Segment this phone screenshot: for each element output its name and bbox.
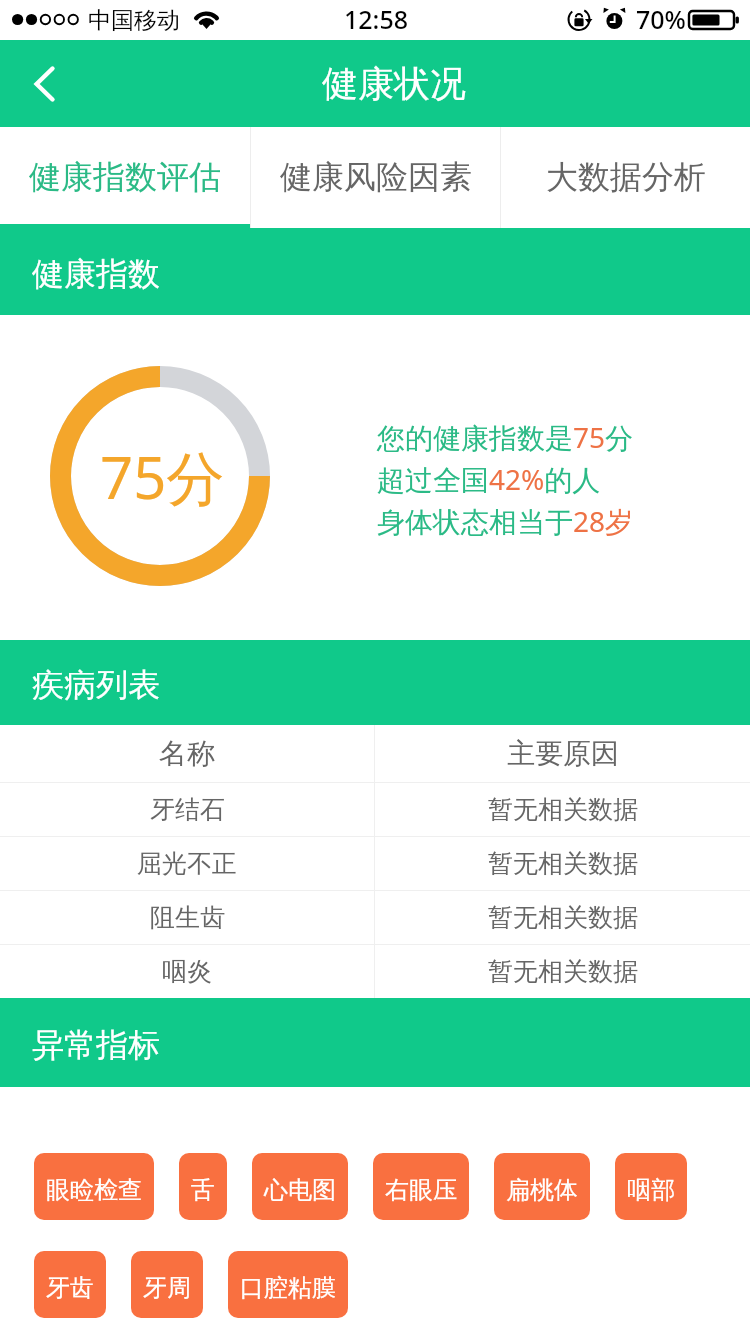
staticText: 异常指标 [32, 1025, 160, 1065]
button[interactable]: 眼睑检查 [34, 1153, 154, 1220]
staticText: 75分 [100, 437, 225, 516]
staticText: 暂无相关数据 [488, 848, 638, 879]
staticText: 健康指数 [32, 254, 160, 294]
staticText: 右眼压 [385, 1175, 457, 1205]
staticText: 牙结石 [150, 794, 225, 825]
button[interactable]: 舌 [179, 1153, 227, 1220]
button[interactable]: 健康指数评估 [0, 127, 250, 228]
staticText: 健康风险因素 [280, 157, 472, 197]
staticText: 疾病列表 [32, 665, 160, 705]
staticText: 健康状况 [322, 61, 466, 106]
button[interactable]: 扁桃体 [494, 1153, 590, 1220]
button[interactable]: 咽部 [615, 1153, 687, 1220]
staticText: 牙齿 [46, 1273, 94, 1303]
staticText: 暂无相关数据 [488, 794, 638, 825]
staticText: 咽炎 [162, 956, 212, 987]
staticText: 大数据分析 [546, 157, 706, 197]
button[interactable]: 牙齿 [34, 1251, 106, 1318]
button[interactable]: 健康风险因素 [251, 127, 500, 228]
staticText: 扁桃体 [506, 1175, 578, 1205]
staticText: 您的健康指数是75分 [377, 418, 634, 456]
staticText: 70% [636, 2, 686, 36]
button[interactable]: 牙周 [131, 1251, 203, 1318]
button[interactable]: 口腔粘膜 [228, 1251, 348, 1318]
staticText: 暂无相关数据 [488, 956, 638, 987]
button[interactable]: Back [0, 40, 86, 127]
staticText: 舌 [191, 1175, 215, 1205]
staticText: 12:58 [344, 2, 409, 36]
staticText: 名称 [159, 736, 215, 771]
button[interactable]: 大数据分析 [501, 127, 750, 228]
staticText: 口腔粘膜 [240, 1273, 336, 1303]
staticText: 主要原因 [507, 736, 619, 771]
staticText: 身体状态相当于28岁 [377, 502, 634, 540]
staticText: 咽部 [627, 1175, 675, 1205]
button[interactable]: 右眼压 [373, 1153, 469, 1220]
staticText: 心电图 [264, 1175, 336, 1205]
staticText: 屈光不正 [137, 848, 237, 879]
staticText: 阻生齿 [150, 902, 225, 933]
staticText: 眼睑检查 [46, 1175, 142, 1205]
staticText: 超过全国42%的人 [377, 460, 601, 498]
staticText: 中国移动 [88, 6, 180, 35]
staticText: 牙周 [143, 1273, 191, 1303]
staticText: 健康指数评估 [29, 157, 221, 197]
button[interactable]: 心电图 [252, 1153, 348, 1220]
staticText: 暂无相关数据 [488, 902, 638, 933]
